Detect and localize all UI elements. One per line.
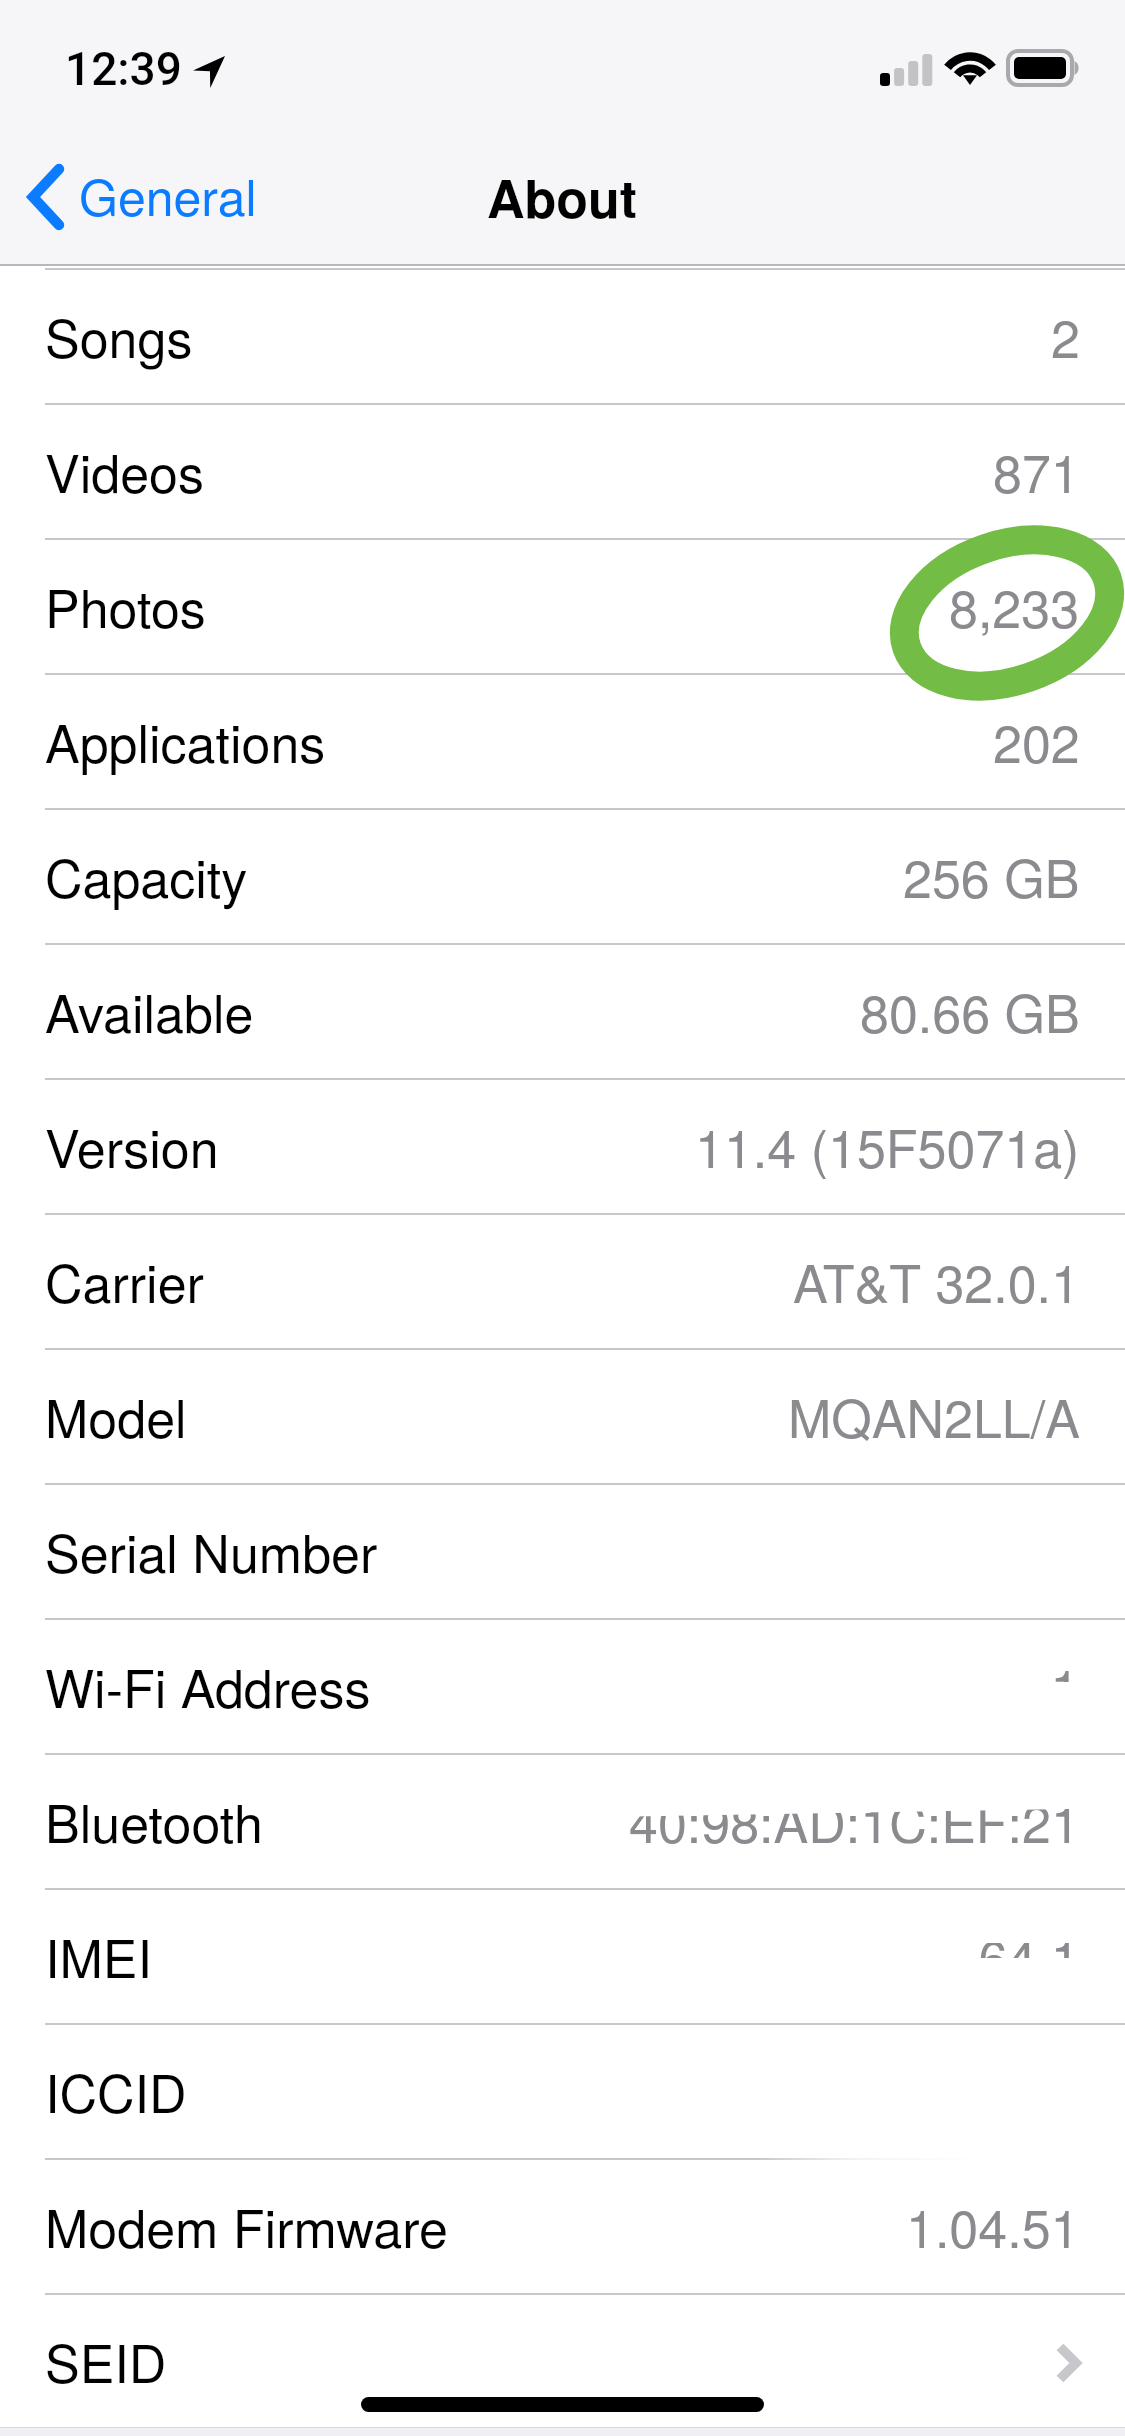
button[interactable]: ICCID [0, 2025, 1125, 2158]
staticText: A8:6B:AD:1C:EF:21 [617, 1648, 1080, 1722]
button[interactable]: Back to General [16, 147, 267, 247]
button[interactable]: Serial Number [0, 1485, 1125, 1618]
button[interactable]: Version [0, 1080, 1125, 1213]
staticText: Serial Number [45, 1513, 378, 1587]
button[interactable]: Carrier [0, 1215, 1125, 1348]
staticText: Bluetooth [45, 1783, 263, 1857]
staticText: ICCID [45, 2053, 187, 2127]
staticText: SEID [45, 2323, 167, 2397]
button[interactable]: SEID [0, 2295, 1125, 2428]
staticText: Model [45, 1378, 187, 1452]
staticText: Videos [45, 433, 204, 507]
staticText: Applications [45, 703, 326, 777]
button[interactable]: Videos [0, 405, 1125, 538]
staticText: 80.66 GB [860, 973, 1080, 1047]
button[interactable]: Photos [0, 540, 1125, 673]
other: Open SEID [1056, 2343, 1080, 2383]
staticText: About [487, 159, 638, 233]
staticText: 2 [1051, 298, 1080, 372]
staticText: 35 841 309 864 1 [675, 1918, 1080, 1992]
button[interactable]: Capacity [0, 810, 1125, 943]
staticText: Version [45, 1108, 219, 1182]
staticText: 1.04.51 [906, 2188, 1080, 2262]
staticText: Modem Firmware [45, 2188, 448, 2262]
other: Location in use [193, 56, 225, 88]
staticText: General [79, 159, 257, 231]
staticText: Wi-Fi Address [45, 1648, 371, 1722]
staticText: 40:98:AD:1C:EF:21 [629, 1783, 1080, 1857]
staticText: Capacity [45, 838, 248, 912]
staticText: AT&T 32.0.1 [793, 1243, 1080, 1317]
button[interactable]: Model [0, 1350, 1125, 1483]
staticText: Photos [45, 568, 206, 642]
button[interactable]: Applications [0, 675, 1125, 808]
button[interactable]: Modem Firmware [0, 2160, 1125, 2293]
staticText: 871 [993, 433, 1080, 507]
button[interactable]: Wi-Fi Address [0, 1620, 1125, 1753]
staticText: 202 [993, 703, 1080, 777]
staticText: MQAN2LL/A [788, 1378, 1080, 1452]
button[interactable]: Bluetooth [0, 1755, 1125, 1888]
staticText: 8,233 [949, 568, 1080, 642]
staticText: Available [45, 973, 254, 1047]
button[interactable]: Songs [0, 270, 1125, 403]
staticText: Songs [45, 298, 193, 372]
other: Back to General [26, 163, 64, 231]
button[interactable]: IMEI [0, 1890, 1125, 2023]
staticText: 12:39 [65, 42, 182, 96]
button[interactable]: Available [0, 945, 1125, 1078]
staticText: 256 GB [903, 838, 1080, 912]
staticText: Carrier [45, 1243, 204, 1317]
staticText: IMEI [45, 1918, 152, 1992]
staticText: 11.4 (15F5071a) [695, 1108, 1080, 1182]
